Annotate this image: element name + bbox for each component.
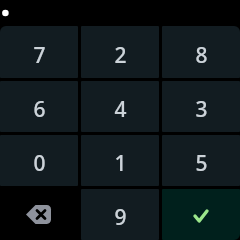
staticText: 7 bbox=[33, 41, 46, 70]
staticText: 2 bbox=[114, 41, 127, 70]
button[interactable]: Confirm bbox=[162, 189, 240, 240]
button[interactable]: 1 bbox=[81, 135, 159, 186]
button[interactable]: 9 bbox=[81, 189, 159, 240]
staticText: 6 bbox=[33, 95, 46, 124]
button[interactable]: 4 bbox=[81, 81, 159, 132]
button[interactable]: 0 bbox=[0, 135, 78, 186]
staticText: 1 bbox=[114, 149, 127, 178]
staticText: 0 bbox=[33, 149, 46, 178]
staticText: 9 bbox=[114, 203, 127, 232]
button[interactable]: 7 bbox=[0, 26, 78, 78]
button[interactable]: Backspace bbox=[0, 189, 78, 240]
staticText: 8 bbox=[195, 41, 208, 70]
staticText: 4 bbox=[114, 95, 127, 124]
button[interactable]: 6 bbox=[0, 81, 78, 132]
staticText: 5 bbox=[195, 149, 208, 178]
button[interactable]: 3 bbox=[162, 81, 240, 132]
button[interactable]: 5 bbox=[162, 135, 240, 186]
staticText: 3 bbox=[195, 95, 208, 124]
button[interactable]: 2 bbox=[81, 26, 159, 78]
button[interactable]: 8 bbox=[162, 26, 240, 78]
